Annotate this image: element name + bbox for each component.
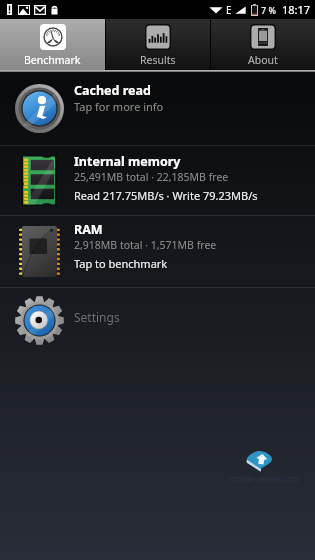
- staticText: Tap to benchmark: [74, 256, 168, 271]
- staticText: mobile-review.com: [228, 473, 301, 484]
- button[interactable]: Settings: [0, 288, 315, 352]
- staticText: About: [248, 53, 278, 67]
- staticText: 25,491MB total · 22,185MB free: [74, 170, 229, 184]
- staticText: Results: [140, 53, 176, 67]
- staticText: Settings: [74, 309, 120, 325]
- staticText: RAM: [74, 221, 103, 238]
- staticText: Tap for more info: [74, 99, 164, 114]
- staticText: Cached read: [74, 82, 151, 99]
- button[interactable]: About: [210, 19, 315, 70]
- button[interactable]: RAM: [0, 216, 315, 287]
- button[interactable]: Cached read: [0, 72, 315, 145]
- button[interactable]: Internal memory: [0, 146, 315, 215]
- staticText: Read 217.75MB/s · Write 79.23MB/s: [74, 188, 258, 203]
- staticText: 7 %: [261, 4, 276, 16]
- staticText: Internal memory: [74, 153, 181, 170]
- staticText: 2,918MB total · 1,571MB free: [74, 238, 217, 252]
- staticText: 18:17: [282, 2, 311, 17]
- button[interactable]: Results: [105, 19, 210, 70]
- button[interactable]: Benchmark: [0, 19, 105, 70]
- staticText: Benchmark: [24, 53, 81, 67]
- staticText: E: [226, 3, 232, 17]
